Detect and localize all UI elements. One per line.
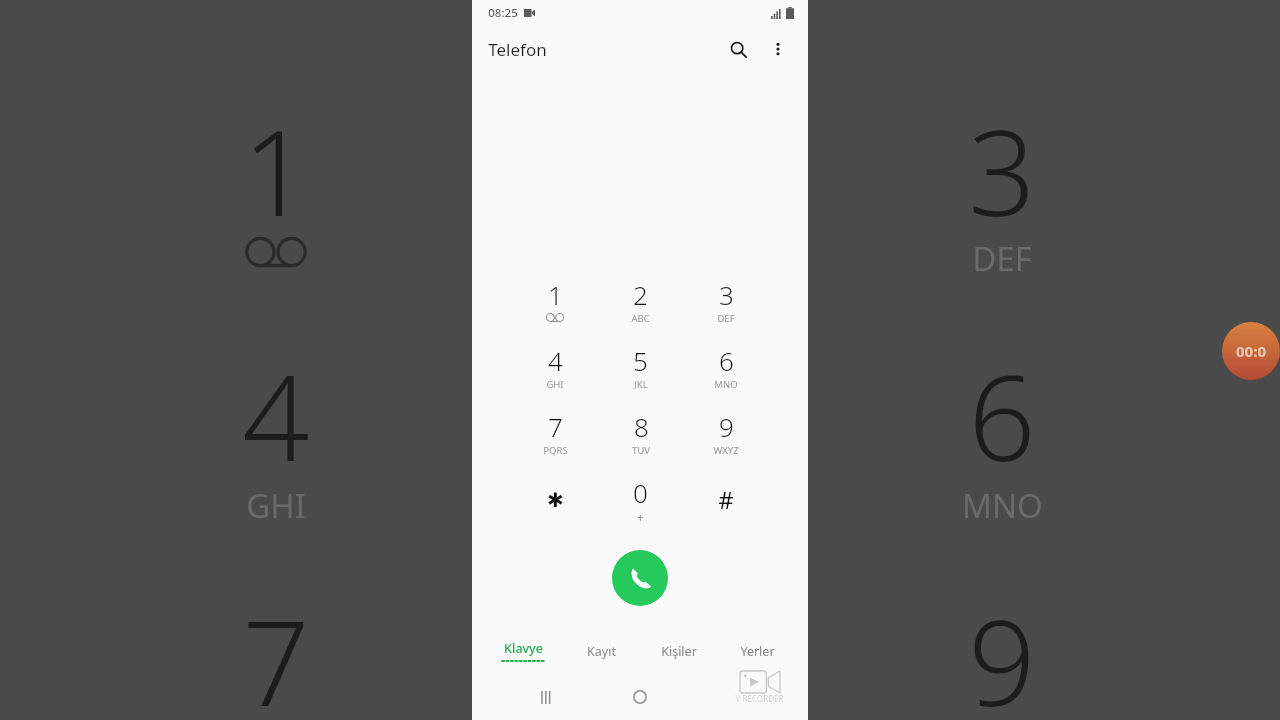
button[interactable]: Call — [612, 550, 668, 606]
staticText: Kişiler — [661, 643, 697, 660]
button[interactable]: 0 — [598, 466, 683, 532]
staticText: 3 — [968, 90, 1036, 240]
staticText: 8 — [634, 409, 649, 441]
button[interactable]: # — [683, 466, 768, 532]
staticText: TUV — [632, 444, 650, 457]
staticText: PQRS — [543, 444, 568, 457]
button[interactable]: More options — [758, 29, 798, 69]
button[interactable]: 9 — [683, 400, 768, 466]
staticText: DEF — [717, 312, 735, 325]
staticText: DEF — [972, 236, 1032, 280]
button[interactable]: 1 — [512, 268, 598, 334]
staticText: 7 — [242, 580, 310, 720]
staticText: ✱ — [547, 488, 564, 511]
staticText: V RECORDER — [735, 693, 784, 704]
staticText: 3 — [719, 277, 734, 309]
button[interactable]: Telefon — [488, 38, 547, 61]
button[interactable]: 7 — [512, 400, 598, 466]
button[interactable]: Kişiler — [640, 636, 718, 666]
staticText: Klavye — [504, 640, 543, 657]
staticText: JKL — [634, 378, 648, 391]
staticText: 5 — [633, 343, 648, 375]
staticText: Kayıt — [587, 643, 616, 660]
button[interactable]: Home — [623, 680, 657, 714]
staticText: 6 — [968, 335, 1036, 485]
staticText: + — [637, 509, 644, 523]
staticText: GHI — [246, 483, 306, 527]
staticText: 2 — [633, 277, 648, 309]
button[interactable]: Yerler — [718, 636, 796, 666]
staticText: 00:0 — [1236, 341, 1266, 361]
button[interactable]: 2 — [598, 268, 683, 334]
staticText: 1 — [548, 277, 563, 309]
button[interactable]: 8 — [598, 400, 683, 466]
staticText: Telefon — [488, 38, 547, 61]
staticText: ABC — [631, 312, 650, 325]
staticText: 0 — [633, 475, 648, 507]
staticText: 4 — [548, 343, 563, 375]
staticText: GHI — [546, 378, 564, 391]
staticText: 6 — [719, 343, 734, 375]
staticText: WXYZ — [713, 444, 739, 457]
staticText: 9 — [719, 409, 734, 441]
button[interactable]: Recents — [530, 680, 564, 714]
staticText: Yerler — [740, 643, 775, 660]
button[interactable]: 3 — [683, 268, 768, 334]
button[interactable]: ✱ — [512, 466, 598, 532]
staticText: # — [718, 483, 734, 516]
button[interactable]: Klavye — [484, 636, 562, 666]
staticText: MNO — [962, 483, 1043, 527]
staticText: 08:25 — [488, 5, 518, 21]
button[interactable]: 6 — [683, 334, 768, 400]
button[interactable]: 5 — [598, 334, 683, 400]
staticText: 7 — [548, 409, 563, 441]
staticText: MNO — [714, 378, 738, 391]
button[interactable]: Search — [718, 29, 758, 69]
staticText: 4 — [242, 335, 310, 485]
button[interactable]: 4 — [512, 334, 598, 400]
button[interactable]: Kayıt — [562, 636, 640, 666]
staticText: 9 — [968, 580, 1036, 720]
staticText: 1 — [242, 90, 310, 240]
